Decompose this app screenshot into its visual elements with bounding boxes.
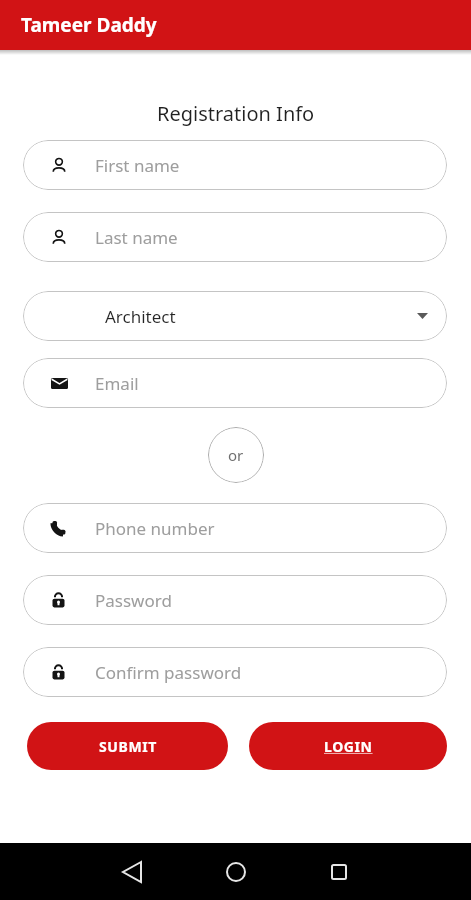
staticText: or xyxy=(228,445,244,465)
button[interactable]: SUBMIT xyxy=(27,722,228,770)
staticText: Architect xyxy=(105,305,176,328)
staticText: First name xyxy=(95,154,180,177)
button[interactable] xyxy=(123,862,141,882)
staticText: Password xyxy=(95,589,172,612)
button[interactable]: Phone number xyxy=(23,503,447,553)
button[interactable] xyxy=(226,862,246,882)
staticText: Confirm password xyxy=(95,661,242,684)
button[interactable]: Confirm password xyxy=(23,647,447,697)
button[interactable]: First name xyxy=(23,140,447,190)
staticText: LOGIN xyxy=(324,737,373,756)
staticText: Last name xyxy=(95,226,178,249)
button[interactable] xyxy=(331,864,347,880)
staticText: Email xyxy=(95,372,139,395)
staticText: SUBMIT xyxy=(99,737,157,756)
button[interactable]: Architect xyxy=(23,291,447,341)
button[interactable]: Last name xyxy=(23,212,447,262)
button[interactable]: Password xyxy=(23,575,447,625)
staticText: Phone number xyxy=(95,517,215,540)
staticText: Registration Info xyxy=(157,100,315,127)
staticText: Tameer Daddy xyxy=(21,12,157,38)
button[interactable]: LOGIN xyxy=(249,722,447,770)
button[interactable]: Email xyxy=(23,358,447,408)
